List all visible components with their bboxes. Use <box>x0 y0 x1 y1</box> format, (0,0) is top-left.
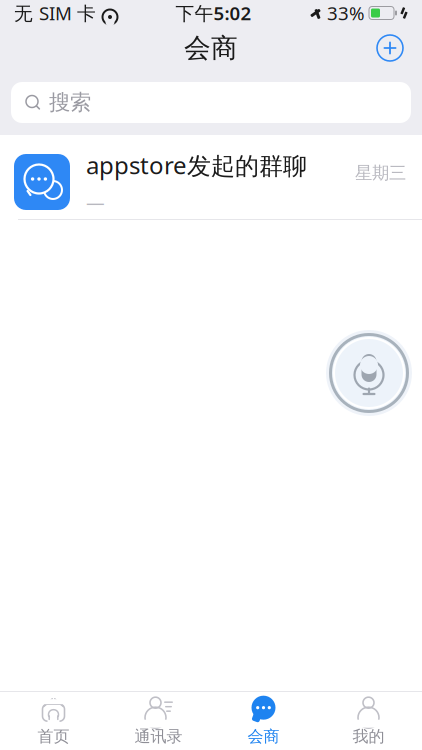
button[interactable]: 搜索 <box>11 82 411 123</box>
staticText: 会商 <box>247 727 279 746</box>
staticText: 无 SIM 卡 <box>14 1 96 25</box>
staticText: — <box>86 190 105 215</box>
button[interactable]: 首页 <box>1 692 106 750</box>
staticText: 33% <box>327 1 365 25</box>
staticText: 星期三 <box>355 162 406 184</box>
staticText: appstore发起的群聊 <box>86 149 307 181</box>
button[interactable]: appstore发起的群聊 <box>0 145 422 219</box>
staticText: 我的 <box>352 727 384 746</box>
staticText: 会商 <box>184 32 238 64</box>
button[interactable]: 通讯录 <box>106 692 211 750</box>
button[interactable]: 语音 <box>326 330 412 416</box>
button[interactable]: 我的 <box>316 692 421 750</box>
staticText: 下午5:02 <box>175 1 251 25</box>
staticText: 搜索 <box>49 89 91 116</box>
staticText: 通讯录 <box>134 727 182 746</box>
button[interactable]: 新建会商 <box>368 26 412 70</box>
button[interactable]: 会商 <box>211 692 316 750</box>
staticText: 首页 <box>37 727 69 746</box>
